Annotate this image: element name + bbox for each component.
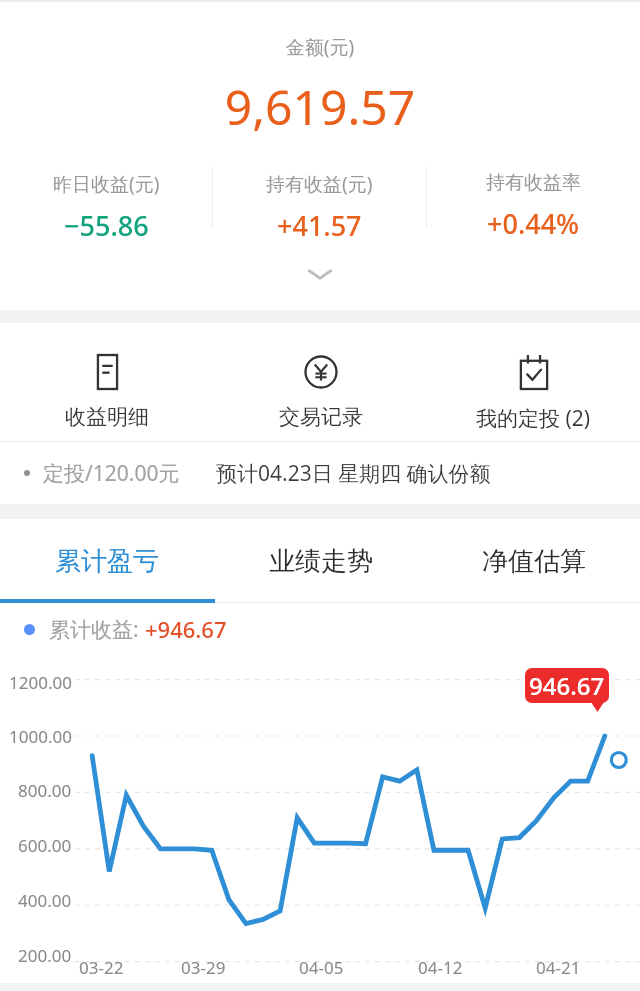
button[interactable]: 净值估算 (427, 519, 640, 603)
staticText: 持有收益率 (486, 171, 581, 195)
staticText: +41.57 (277, 207, 362, 244)
staticText: 800.00 (18, 779, 72, 802)
staticText: 9,619.57 (0, 74, 640, 139)
staticText: −55.86 (64, 207, 149, 244)
staticText: 1000.00 (9, 725, 72, 748)
staticText: 03-29 (181, 956, 226, 979)
staticText: 1200.00 (9, 671, 72, 694)
staticText: 04-12 (418, 956, 463, 979)
staticText: 03-22 (79, 956, 124, 979)
button[interactable]: 我的定投 (2) (427, 323, 640, 433)
staticText: 04-21 (536, 956, 581, 979)
staticText: 600.00 (18, 834, 72, 857)
staticText: +946.67 (145, 614, 227, 644)
button[interactable]: 昨日收益(元) (0, 167, 212, 244)
staticText: 400.00 (18, 889, 72, 912)
staticText: 946.67 (529, 669, 605, 702)
staticText: 定投/120.00元 (43, 459, 180, 488)
button[interactable]: 持有收益(元) (213, 167, 426, 244)
staticText: 04-05 (299, 956, 344, 979)
staticText: 净值估算 (482, 545, 586, 578)
staticText: 累计盈亏 (55, 545, 159, 578)
staticText: +0.44% (487, 205, 580, 242)
button[interactable]: 展开更多 (0, 253, 640, 295)
staticText: 我的定投 (2) (476, 404, 591, 433)
staticText: 昨日收益(元) (53, 171, 160, 197)
button[interactable]: 持有收益率 (427, 167, 640, 242)
staticText: 金额(元) (0, 34, 640, 60)
staticText: 收益明细 (65, 404, 149, 430)
staticText: 预计04.23日 星期四 确认份额 (216, 459, 491, 488)
button[interactable]: 定投/120.00元 (0, 442, 640, 504)
staticText: 200.00 (18, 944, 72, 967)
button[interactable]: 累计盈亏 (0, 519, 214, 603)
staticText: 交易记录 (279, 404, 363, 430)
staticText: 业绩走势 (269, 545, 373, 578)
staticText: 累计收益: (49, 615, 139, 644)
button[interactable]: 交易记录 (214, 323, 427, 430)
staticText: 持有收益(元) (266, 171, 373, 197)
button[interactable]: 业绩走势 (214, 519, 427, 603)
button[interactable]: 收益明细 (0, 323, 214, 430)
